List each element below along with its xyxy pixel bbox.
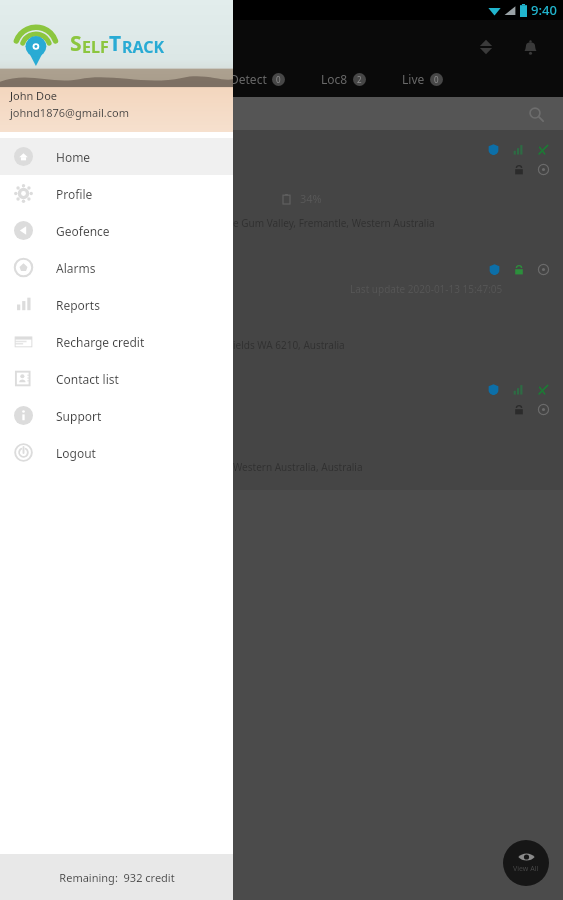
staticText: Live [402,71,425,87]
staticText: RACK [122,36,165,58]
staticText: S [70,29,82,58]
button[interactable]: Alarms [0,249,233,286]
staticText: ields WA 6210, Australia [233,338,345,352]
button[interactable]: Home [0,138,233,175]
button[interactable]: Contact list [0,360,233,397]
button[interactable]: Search [0,97,563,130]
button[interactable]: Logout [0,434,233,471]
staticText: ELF [82,36,109,58]
button[interactable]: Recharge credit [0,323,233,360]
staticText: 0 [434,74,439,85]
button[interactable]: Live [402,71,443,87]
other: Search [525,103,547,125]
staticText: Western Australia, Australia [233,460,363,474]
button[interactable]: John Doe [10,88,129,120]
staticText: Recharge credit [56,334,145,350]
button[interactable]: Detect [230,71,285,87]
staticText: e Gum Valley, Fremantle, Western Austral… [233,216,435,230]
staticText: T [109,29,122,58]
staticText: Detect [230,71,267,87]
staticText: Profile [56,186,93,202]
button[interactable]: Notifications [511,28,549,66]
button[interactable]: Support [0,397,233,434]
staticText: Contact list [56,371,119,387]
staticText: 0 [276,74,281,85]
button[interactable]: View All [503,840,549,886]
staticText: Home [56,149,91,165]
staticText: Support [56,408,102,424]
staticText: johnd1876@gmail.com [10,105,129,120]
staticText: 2 [357,74,362,85]
staticText: Geofence [56,223,110,239]
staticText: View All [513,864,539,874]
staticText: Loc8 [321,71,348,87]
button[interactable]: Last update 2020-01-13 15:47:05 [0,250,563,370]
button[interactable]: 34% [0,130,563,250]
button[interactable]: Remaining: 932 credit [0,854,233,900]
staticText: Alarms [56,260,96,276]
button[interactable]: Reports [0,286,233,323]
staticText: Reports [56,297,100,313]
button[interactable]: Geofence [0,212,233,249]
staticText: Remaining: 932 credit [59,870,175,885]
staticText: 9:40 [531,1,557,19]
button[interactable]: Loc8 [321,71,366,87]
staticText: John Doe [10,88,58,103]
button[interactable]: Sort [467,28,505,66]
button[interactable]: Western Australia, Australia [0,370,563,490]
staticText: Last update 2020-01-13 15:47:05 [350,282,503,296]
staticText: 34% [300,191,322,206]
button[interactable]: Profile [0,175,233,212]
staticText: Logout [56,445,96,461]
